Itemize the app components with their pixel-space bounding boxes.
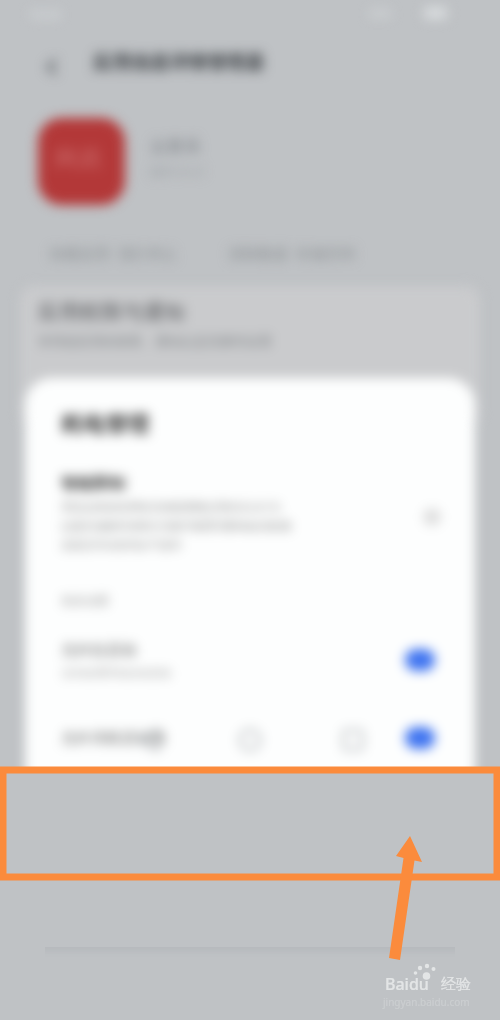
button[interactable]: 允许自启动 xyxy=(25,624,475,696)
staticText: jingyan.baidu.com xyxy=(383,995,470,1009)
staticText: 以延长续航时间部分功能可能受到影响如消息推 xyxy=(61,519,292,533)
button[interactable]: 允许关联启动项 xyxy=(25,708,475,767)
staticText: 允许自启动 xyxy=(61,641,136,660)
staticText: 系统会根据使用情况智能调整应用的后台行为 xyxy=(61,500,281,514)
staticText: 云音乐 xyxy=(150,136,201,157)
button[interactable]: Back xyxy=(40,54,66,80)
button[interactable]: Home xyxy=(222,712,278,767)
staticText: 允许关联启动项 xyxy=(61,729,405,748)
staticText: 更多设置 xyxy=(61,593,109,608)
staticText: 卸载应用 强行停止 xyxy=(50,243,178,263)
other: 开关 xyxy=(405,727,435,749)
staticText: 经验 xyxy=(441,975,471,994)
staticText: 应用权限与通知 xyxy=(38,299,185,325)
staticText: 应用信息详情管理器 xyxy=(93,51,264,75)
button[interactable]: Recents xyxy=(325,712,381,767)
other: 开关 xyxy=(405,649,435,671)
staticText: 网易 xyxy=(54,144,102,174)
staticText: 管理该应用的权限、通知以及流量等设置 xyxy=(38,333,272,349)
staticText: 送延迟等信息同步不及时 xyxy=(61,538,182,552)
staticText: Baidu xyxy=(385,973,429,995)
staticText: 清除数据 存储空间 xyxy=(228,243,356,263)
staticText: 耗电管理 xyxy=(61,411,149,439)
button[interactable]: Back xyxy=(120,712,176,767)
staticText: 智能限制 xyxy=(61,474,125,494)
